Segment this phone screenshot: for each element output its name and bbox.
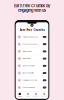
staticText: Join our newsletter xyxy=(22,72,34,74)
staticText: Earn free Crumbs by xyxy=(14,3,50,8)
staticText: Rewards xyxy=(33,95,40,97)
button[interactable]: Rewards xyxy=(32,93,40,97)
button[interactable]: Share on Facebook xyxy=(16,41,48,48)
staticText: Home xyxy=(18,95,22,97)
staticText: +5 xyxy=(43,79,45,81)
staticText: engaging with us xyxy=(18,8,46,13)
staticText: +5 xyxy=(43,36,45,38)
staticText: Account xyxy=(41,95,47,97)
button[interactable]: Follow us on Instagram xyxy=(16,33,48,41)
button[interactable]: Watch a short video xyxy=(16,62,48,69)
staticText: +5 xyxy=(43,43,45,45)
staticText: +5 xyxy=(44,65,46,67)
button[interactable]: Account xyxy=(40,93,48,97)
button[interactable]: Write a review xyxy=(16,48,48,55)
staticText: Add your birthday xyxy=(22,87,35,88)
staticText: Earn Free Crumbs xyxy=(19,28,44,32)
staticText: Complete your profile xyxy=(22,79,37,81)
button[interactable]: Home xyxy=(16,93,24,97)
staticText: Follow us on Instagram xyxy=(22,36,37,38)
staticText: +5 xyxy=(44,72,46,74)
staticText: Share on Facebook xyxy=(22,43,37,45)
staticText: Write a review xyxy=(22,50,31,52)
staticText: +5 xyxy=(44,87,46,88)
button[interactable]: Refer a friend xyxy=(16,55,48,62)
staticText: Menu xyxy=(26,95,30,97)
button[interactable]: Menu xyxy=(24,93,32,97)
button[interactable]: Join our newsletter xyxy=(16,69,48,77)
staticText: Watch a short video xyxy=(22,65,35,67)
staticText: +5 xyxy=(44,50,46,52)
staticText: Refer a friend xyxy=(22,58,31,59)
button[interactable]: Add your birthday xyxy=(16,84,48,91)
button[interactable]: Complete your profile xyxy=(16,77,48,84)
staticText: +5 xyxy=(44,58,46,59)
